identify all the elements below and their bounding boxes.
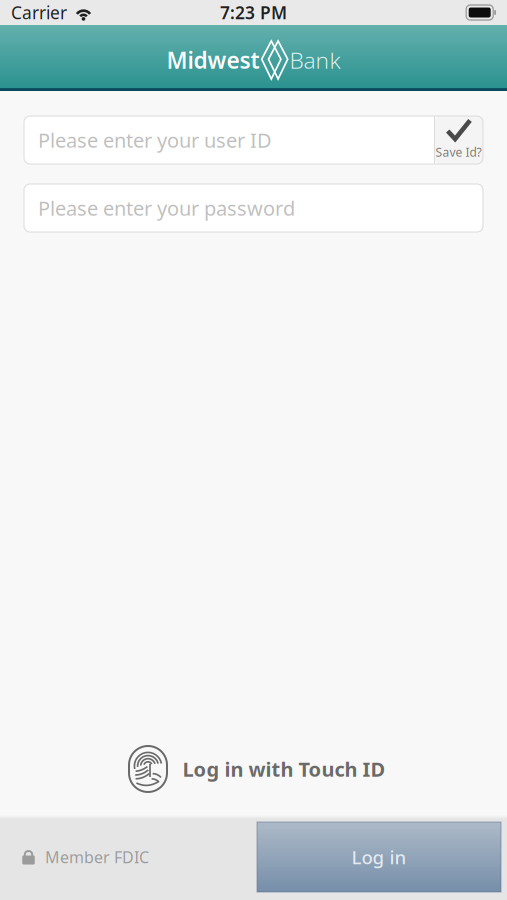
staticText: Carrier	[11, 1, 67, 24]
staticText: Member FDIC	[45, 846, 149, 868]
button[interactable]: Please enter your password	[24, 184, 483, 232]
button[interactable]: Please enter your user ID	[24, 116, 434, 164]
button[interactable]: Log in with Touch ID	[121, 745, 385, 793]
staticText: Log in	[351, 845, 406, 869]
staticText: Midwest	[166, 45, 259, 75]
staticText: Please enter your password	[38, 195, 295, 221]
staticText: Log in with Touch ID	[182, 756, 385, 782]
button[interactable]: Log in	[257, 822, 501, 892]
staticText: Bank	[289, 45, 340, 75]
button[interactable]: Save Id?	[434, 116, 483, 164]
staticText: Save Id?	[435, 144, 481, 160]
staticText: 7:23 PM	[220, 1, 287, 24]
staticText: Please enter your user ID	[38, 127, 272, 153]
